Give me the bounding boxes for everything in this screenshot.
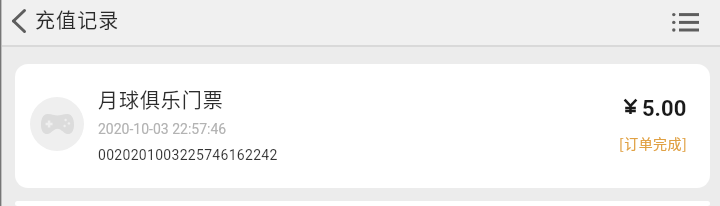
staticText: 充值记录	[35, 5, 120, 34]
staticText: 2020-10-03 22:57:46	[98, 121, 227, 137]
button[interactable]: 月球俱乐门票	[15, 64, 710, 188]
staticText: 0020201003225746162242	[98, 147, 278, 163]
staticText: [订单完成]	[619, 133, 688, 153]
button[interactable]: Back	[2, 3, 38, 42]
staticText: 月球俱乐门票	[98, 85, 224, 114]
staticText: 5.00	[642, 96, 687, 122]
button[interactable]: Menu	[661, 4, 699, 42]
